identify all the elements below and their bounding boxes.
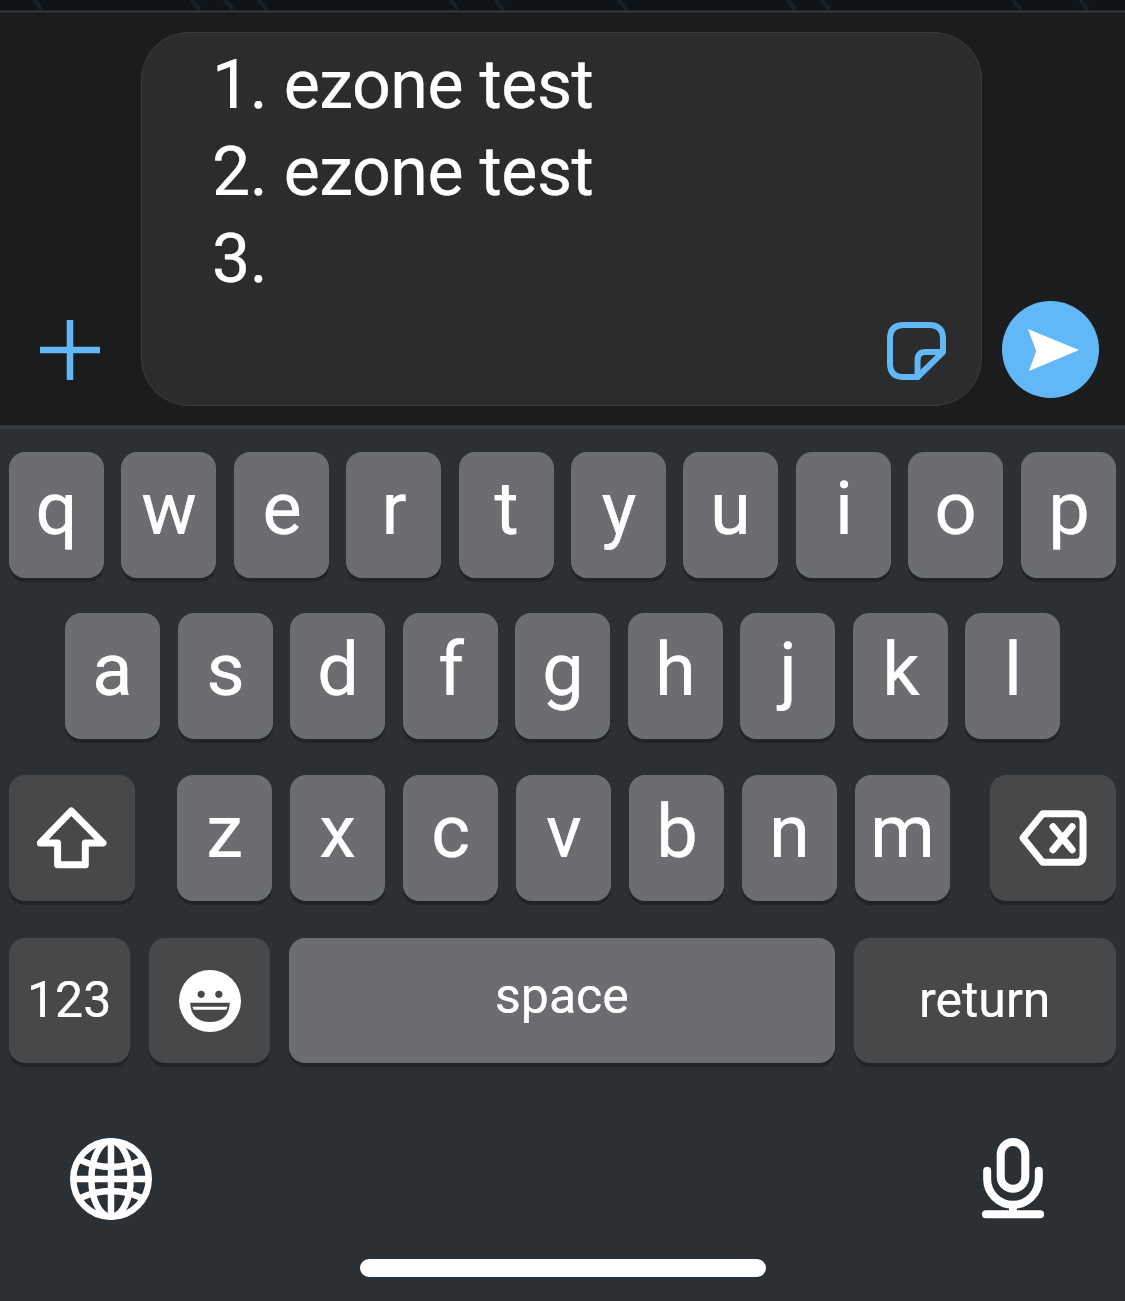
button[interactable]: Stickers — [866, 301, 966, 401]
staticText: o — [934, 465, 977, 552]
staticText: 2. ezone test — [212, 132, 594, 212]
button[interactable]: p — [1021, 452, 1116, 578]
staticText: space — [495, 967, 629, 1026]
button[interactable]: a — [65, 613, 160, 739]
button[interactable]: r — [346, 452, 441, 578]
button[interactable]: m — [855, 775, 950, 901]
staticText: n — [769, 788, 810, 875]
staticText: d — [317, 626, 359, 713]
button[interactable]: e — [234, 452, 329, 578]
button[interactable]: space — [289, 938, 835, 1063]
button[interactable]: s — [178, 613, 273, 739]
staticText: 3. — [212, 219, 268, 299]
button[interactable]: n — [742, 775, 837, 901]
button[interactable]: j — [740, 613, 835, 739]
button[interactable]: t — [459, 452, 554, 578]
staticText: y — [601, 465, 637, 552]
staticText: 123 — [27, 971, 112, 1030]
button[interactable]: Attach — [20, 300, 120, 400]
button[interactable]: o — [908, 452, 1003, 578]
staticText: b — [656, 788, 698, 875]
staticText: 1. ezone test — [212, 45, 594, 125]
button[interactable]: Voice input — [968, 1134, 1058, 1224]
staticText: r — [381, 465, 407, 552]
staticText: t — [494, 465, 519, 552]
button[interactable]: Emoji — [149, 938, 270, 1063]
staticText: j — [779, 626, 797, 713]
staticText: c — [431, 788, 470, 875]
staticText: w — [141, 465, 197, 552]
button[interactable]: Send — [1002, 301, 1099, 398]
button[interactable]: u — [683, 452, 778, 578]
staticText: m — [870, 788, 935, 875]
button[interactable]: w — [121, 452, 216, 578]
staticText: v — [546, 788, 582, 875]
staticText: e — [262, 465, 302, 552]
button[interactable]: Shift — [9, 775, 135, 901]
button[interactable]: 1. ezone test — [141, 32, 982, 406]
button[interactable]: q — [9, 452, 104, 578]
staticText: s — [206, 626, 245, 713]
staticText: p — [1048, 465, 1090, 552]
button[interactable]: z — [177, 775, 272, 901]
button[interactable]: h — [628, 613, 723, 739]
button[interactable]: v — [516, 775, 611, 901]
button[interactable]: l — [965, 613, 1060, 739]
staticText: u — [710, 465, 751, 552]
staticText: q — [35, 465, 78, 552]
staticText: return — [919, 971, 1051, 1030]
staticText: l — [1004, 626, 1022, 713]
button[interactable]: x — [290, 775, 385, 901]
button[interactable]: f — [403, 613, 498, 739]
staticText: z — [206, 788, 243, 875]
staticText: a — [92, 626, 133, 713]
staticText: g — [542, 626, 584, 713]
button[interactable]: 123 — [9, 938, 130, 1063]
button[interactable]: i — [796, 452, 891, 578]
button[interactable]: return — [854, 938, 1116, 1063]
button[interactable]: b — [629, 775, 724, 901]
staticText: i — [835, 465, 853, 552]
staticText: f — [438, 626, 464, 713]
button[interactable]: g — [515, 613, 610, 739]
staticText: x — [319, 788, 356, 875]
button[interactable]: y — [571, 452, 666, 578]
button[interactable]: k — [853, 613, 948, 739]
button[interactable]: d — [290, 613, 385, 739]
staticText: k — [882, 626, 920, 713]
button[interactable]: c — [403, 775, 498, 901]
button[interactable]: Backspace — [990, 775, 1116, 901]
staticText: h — [655, 626, 696, 713]
button[interactable]: Switch keyboard — [66, 1134, 156, 1224]
